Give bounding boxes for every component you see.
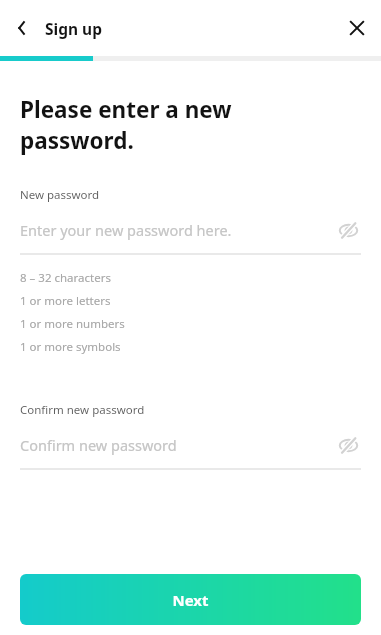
- staticText: Enter your new password here.: [20, 220, 335, 240]
- staticText: New password: [20, 187, 100, 203]
- button[interactable]: Show password: [335, 217, 361, 243]
- staticText: Sign up: [45, 18, 102, 39]
- staticText: Confirm new password: [20, 402, 145, 418]
- staticText: 1 or more symbols: [20, 339, 121, 355]
- staticText: Confirm new password: [20, 435, 335, 455]
- button[interactable]: Next: [20, 574, 361, 625]
- staticText: 1 or more letters: [20, 293, 111, 309]
- staticText: 1 or more numbers: [20, 316, 125, 332]
- button[interactable]: Back: [0, 6, 44, 50]
- button[interactable]: Show password: [335, 432, 361, 458]
- staticText: Next: [172, 590, 209, 610]
- staticText: Please enter a new password.: [20, 94, 232, 155]
- staticText: 8 – 32 characters: [20, 270, 111, 286]
- button[interactable]: Close: [333, 4, 381, 52]
